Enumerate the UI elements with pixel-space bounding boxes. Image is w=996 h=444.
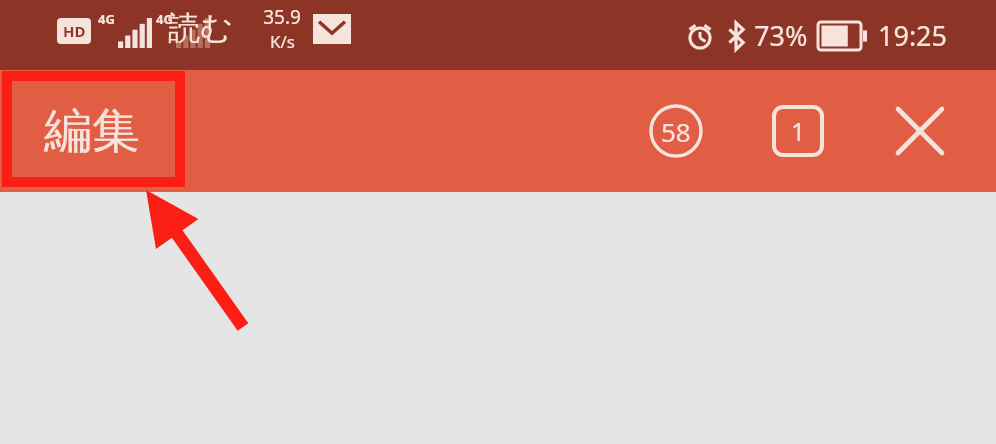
staticText: 1: [791, 114, 806, 148]
button[interactable]: ブックマーク 58: [640, 95, 712, 167]
staticText: 編集: [44, 101, 140, 161]
staticText: 58: [661, 114, 691, 149]
button[interactable]: 編集: [12, 83, 172, 179]
button[interactable]: 閉じる: [884, 95, 956, 167]
staticText: 読む: [168, 8, 233, 48]
staticText: 35.9: [263, 4, 301, 30]
staticText: 4G: [98, 10, 115, 28]
staticText: K/s: [270, 30, 295, 53]
button[interactable]: タブ 1: [762, 95, 834, 167]
staticText: 73%: [754, 17, 808, 54]
staticText: 4G: [156, 10, 173, 28]
staticText: HD: [63, 21, 86, 41]
staticText: 19:25: [878, 17, 948, 54]
